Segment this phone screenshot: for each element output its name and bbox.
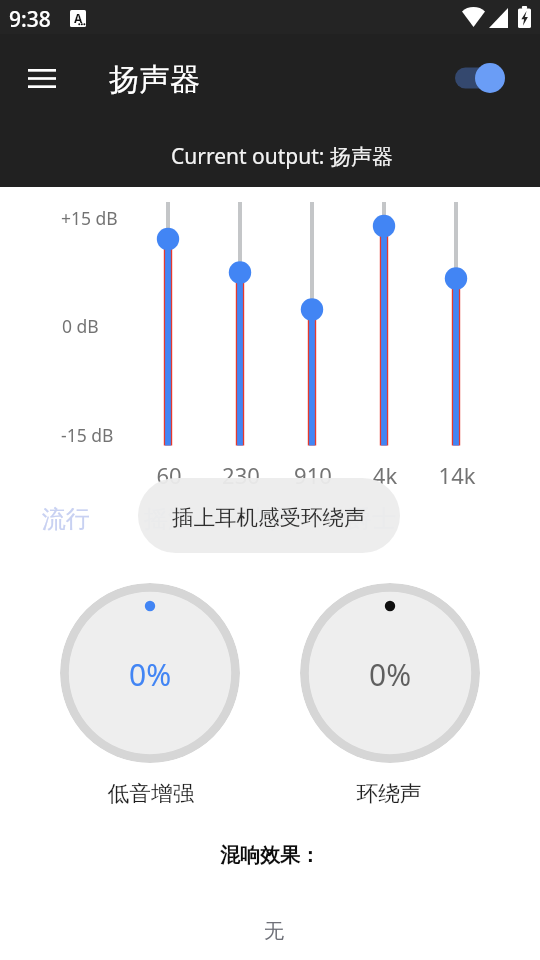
button[interactable]: 低音增强 <box>60 583 240 763</box>
staticText: +15 dB <box>61 206 118 230</box>
staticText: A <box>74 10 83 26</box>
button[interactable]: 910 Hz band level <box>288 195 336 455</box>
staticText: 扬声器 <box>109 61 201 99</box>
button[interactable]: 流行 <box>28 492 104 544</box>
button[interactable]: 摇滚 <box>130 492 206 544</box>
staticText: 混响效果： <box>0 843 540 868</box>
button[interactable]: 古典 <box>232 492 308 544</box>
staticText: Current output: 扬声器 <box>12 142 540 171</box>
button[interactable]: 60 Hz band level <box>144 195 192 455</box>
staticText: 0% <box>369 654 412 695</box>
staticText: 摇滚 <box>144 504 192 534</box>
button[interactable]: 4k Hz band level <box>360 195 408 455</box>
button[interactable]: 14k Hz band level <box>432 195 480 455</box>
button[interactable]: 无 <box>244 919 304 944</box>
staticText: 60 <box>139 460 199 490</box>
staticText: 230 <box>211 460 271 490</box>
staticText: 9:38 <box>9 5 51 34</box>
button[interactable]: 爵士 <box>334 492 410 544</box>
staticText: 插上耳机感受环绕声 <box>172 504 366 531</box>
button[interactable]: Enable equalizer <box>450 54 512 102</box>
staticText: 流行 <box>42 504 90 534</box>
staticText: 14k <box>427 460 487 490</box>
staticText: 4k <box>355 460 415 490</box>
staticText: 910 <box>283 460 343 490</box>
button[interactable]: 环绕声 <box>300 583 480 763</box>
staticText: 低音增强 <box>91 780 211 807</box>
staticText: 古典 <box>246 504 294 534</box>
staticText: 0 dB <box>62 314 99 338</box>
staticText: 0% <box>129 654 172 695</box>
staticText: 环绕声 <box>329 780 449 807</box>
staticText: -15 dB <box>61 423 114 447</box>
button[interactable]: 230 Hz band level <box>216 195 264 455</box>
staticText: 爵士 <box>348 504 396 534</box>
button[interactable]: Open navigation menu <box>18 54 66 102</box>
